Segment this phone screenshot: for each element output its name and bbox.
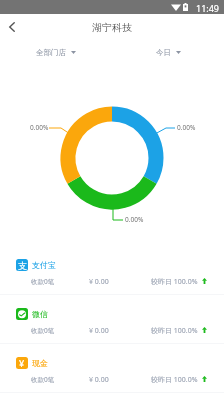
staticText: 较昨日 100.0%	[151, 375, 198, 385]
staticText: 全部门店	[36, 48, 66, 57]
button[interactable]: Back	[0, 15, 24, 39]
button[interactable]: 支	[0, 253, 224, 302]
staticText: ¥ 0.00	[89, 326, 109, 336]
staticText: 湖宁科技	[92, 21, 132, 34]
button[interactable]: 全部门店	[30, 45, 82, 60]
staticText: ¥ 0.00	[89, 277, 109, 287]
staticText: 支付宝	[32, 260, 56, 270]
staticText: 现金	[32, 358, 48, 368]
button[interactable]: 微信	[0, 302, 224, 351]
staticText: ¥ 0.00	[89, 375, 109, 385]
staticText: 11:49	[196, 2, 220, 14]
staticText: 收款0笔	[31, 277, 55, 286]
staticText: 支	[18, 260, 27, 271]
staticText: 收款0笔	[31, 375, 55, 384]
staticText: 0.00%	[30, 123, 49, 132]
button[interactable]: 今日	[150, 45, 187, 60]
staticText: 0.00%	[177, 123, 196, 132]
button[interactable]: ¥	[0, 351, 224, 400]
staticText: 微信	[32, 309, 48, 319]
staticText: 较昨日 100.0%	[151, 326, 198, 336]
staticText: 较昨日 100.0%	[151, 277, 198, 287]
staticText: ¥	[19, 357, 25, 369]
staticText: 0.00%	[125, 215, 144, 224]
staticText: 今日	[156, 48, 171, 57]
staticText: 收款0笔	[31, 326, 55, 335]
